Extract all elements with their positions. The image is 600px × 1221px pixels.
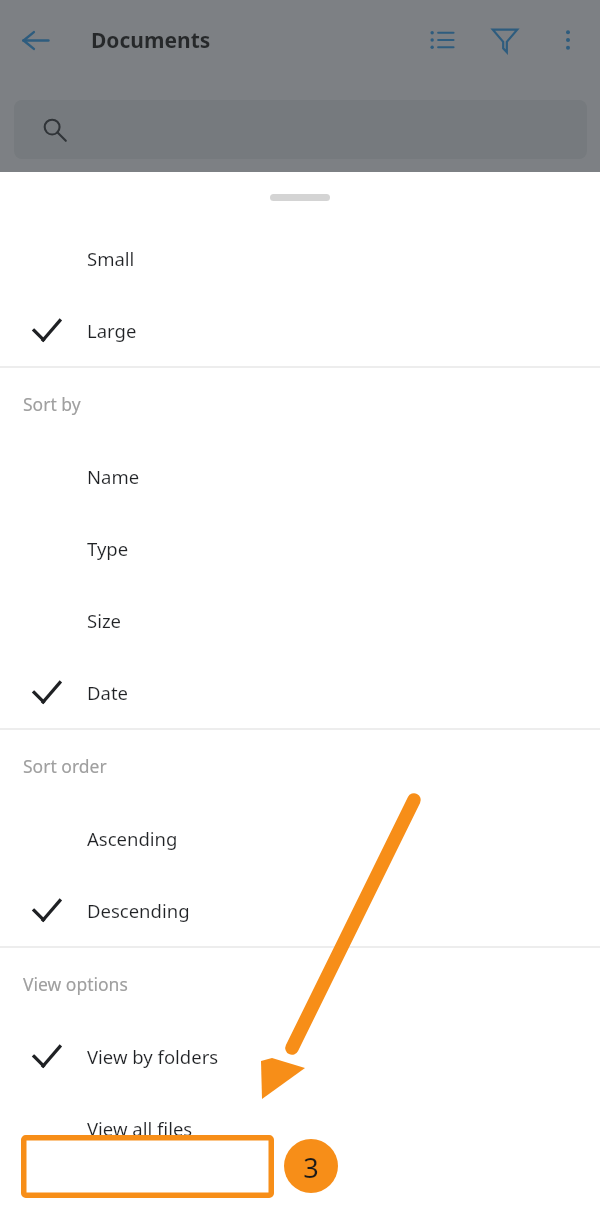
staticText: Sort by [23, 392, 81, 416]
button[interactable]: Size [0, 584, 600, 656]
button[interactable]: Small [0, 222, 600, 294]
staticText: View options [23, 972, 128, 996]
button[interactable]: Large [0, 294, 600, 366]
button[interactable]: Search [14, 100, 587, 159]
button[interactable]: Ascending [0, 802, 600, 874]
button[interactable]: Name [0, 440, 600, 512]
button[interactable]: Back [12, 17, 58, 63]
staticText: Ascending [87, 826, 178, 851]
button[interactable]: Type [0, 512, 600, 584]
staticText: View all files [87, 1116, 193, 1141]
staticText: Documents [91, 26, 211, 55]
button[interactable]: List view [419, 17, 465, 63]
staticText: Type [87, 536, 129, 561]
button[interactable]: Filter [482, 17, 528, 63]
staticText: Large [87, 318, 137, 343]
button[interactable]: Descending [0, 874, 600, 946]
staticText: Size [87, 608, 122, 633]
staticText: Sort order [23, 754, 107, 778]
staticText: 3 [303, 1149, 319, 1186]
button[interactable]: View all files [0, 1092, 600, 1164]
staticText: Descending [87, 898, 190, 923]
staticText: Name [87, 464, 140, 489]
button[interactable]: More options [545, 17, 591, 63]
staticText: Date [87, 680, 128, 705]
staticText: View by folders [87, 1044, 219, 1069]
staticText: Small [87, 246, 135, 271]
button[interactable]: View by folders [0, 1020, 600, 1092]
button[interactable]: Date [0, 656, 600, 728]
